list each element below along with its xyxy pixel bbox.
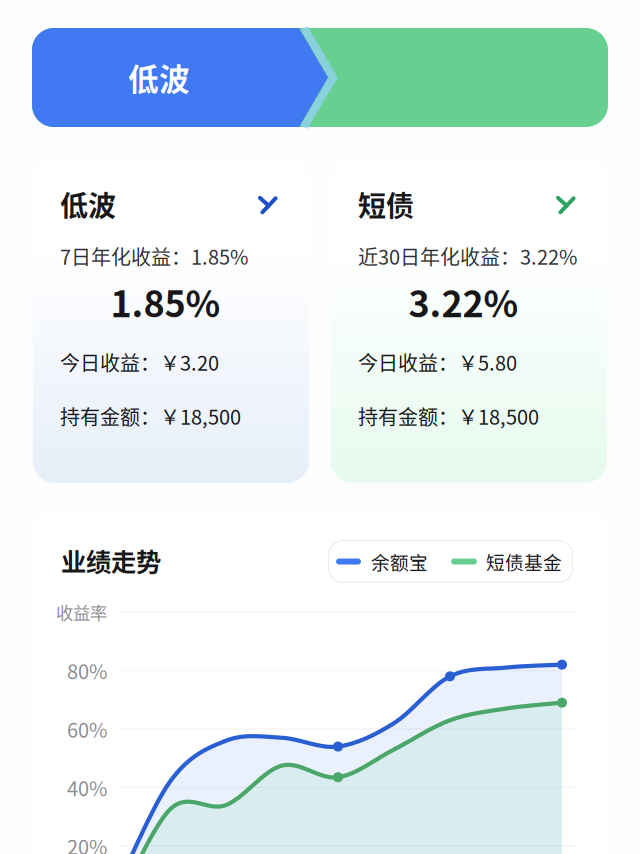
staticText: 持有金额：￥18,500	[358, 402, 539, 431]
staticText: 40%	[67, 773, 107, 802]
staticText: 短债基金	[486, 548, 562, 575]
staticText: 80%	[67, 656, 107, 685]
staticText: 60%	[67, 714, 107, 743]
staticText: 余额宝	[371, 548, 428, 575]
staticText: 低波	[128, 55, 190, 100]
staticText: 今日收益：￥3.20	[60, 348, 219, 377]
staticText: 业绩走势	[61, 542, 161, 579]
staticText: 收益率	[56, 599, 107, 625]
button[interactable]: 短债	[331, 158, 607, 483]
staticText: 3.22%	[408, 275, 518, 328]
staticText: 7日年化收益：1.85%	[60, 241, 248, 270]
staticText: 持有金额：￥18,500	[60, 402, 241, 431]
staticText: 20%	[67, 831, 107, 854]
staticText: 1.85%	[110, 275, 220, 328]
staticText: 低波	[60, 184, 116, 224]
staticText: 短债	[358, 184, 414, 224]
staticText: 近30日年化收益：3.22%	[358, 241, 577, 270]
button[interactable]: 低波	[32, 28, 608, 127]
staticText: 今日收益：￥5.80	[358, 348, 517, 377]
button[interactable]: 低波	[33, 158, 309, 483]
